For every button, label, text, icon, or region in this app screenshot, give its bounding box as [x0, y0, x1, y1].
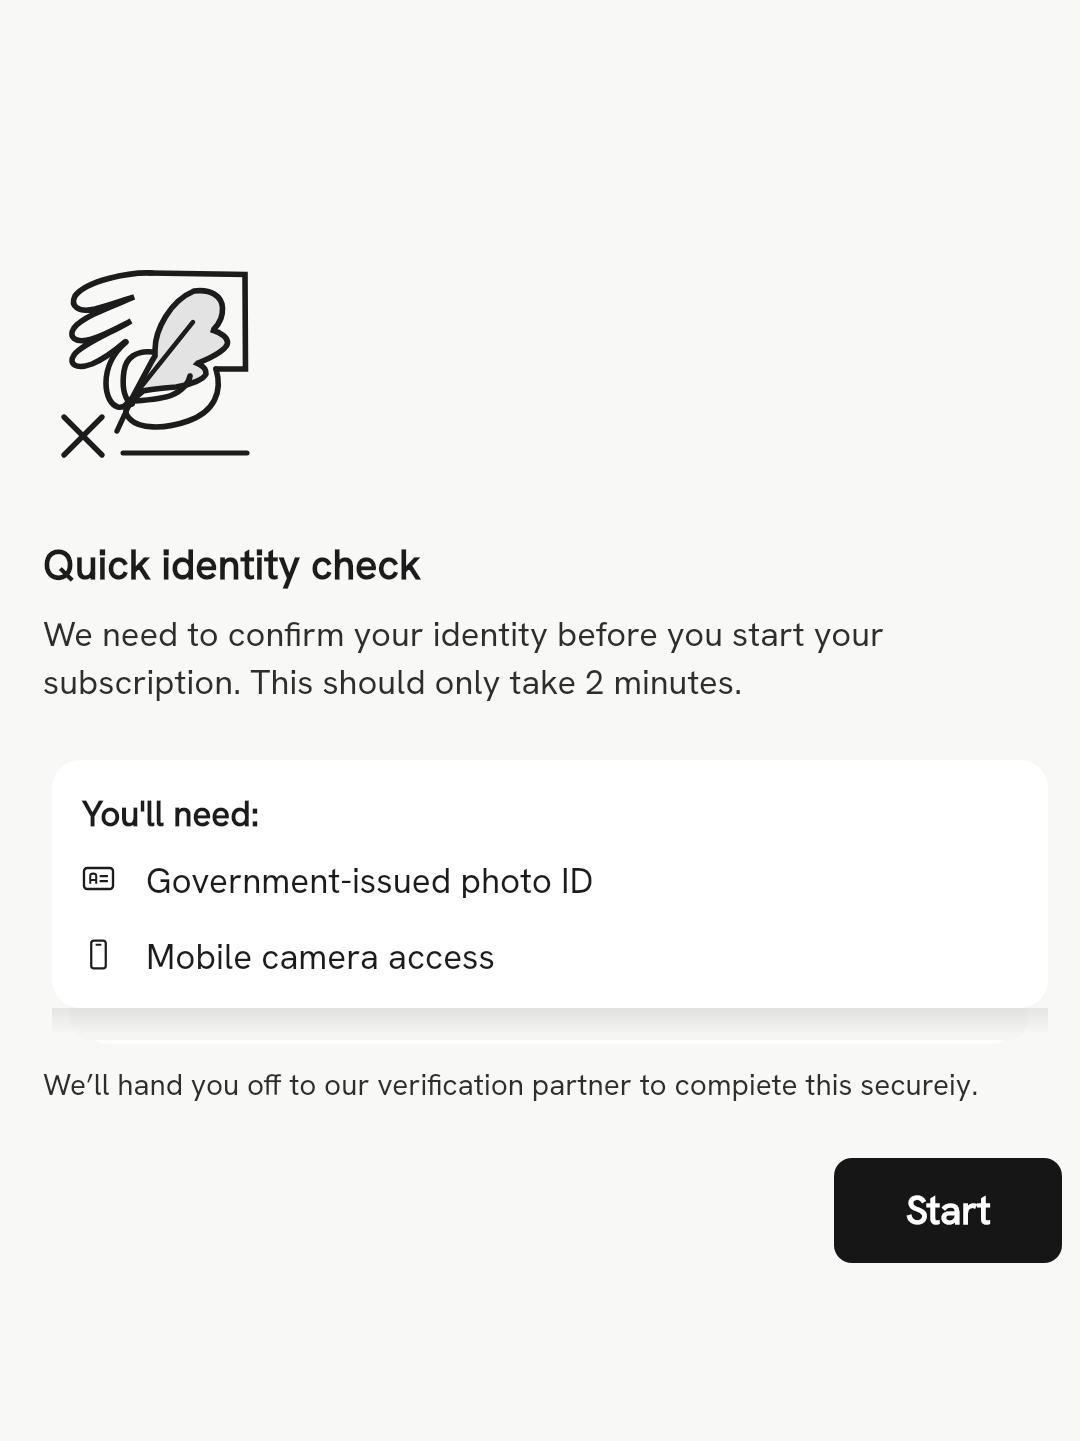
- staticText: Government-issued photo ID: [146, 858, 594, 898]
- button[interactable]: Start: [834, 1158, 1062, 1263]
- staticText: We’ll hand you off to our verification p…: [43, 1065, 979, 1104]
- staticText: We need to confirm your identity before …: [43, 611, 913, 704]
- staticText: Mobile camera access: [146, 934, 495, 974]
- other: Hand signing a document with a quill: [40, 250, 270, 480]
- staticText: You'll need:: [82, 791, 260, 837]
- staticText: Start: [906, 1185, 991, 1236]
- staticText: Quick identity check: [43, 537, 422, 591]
